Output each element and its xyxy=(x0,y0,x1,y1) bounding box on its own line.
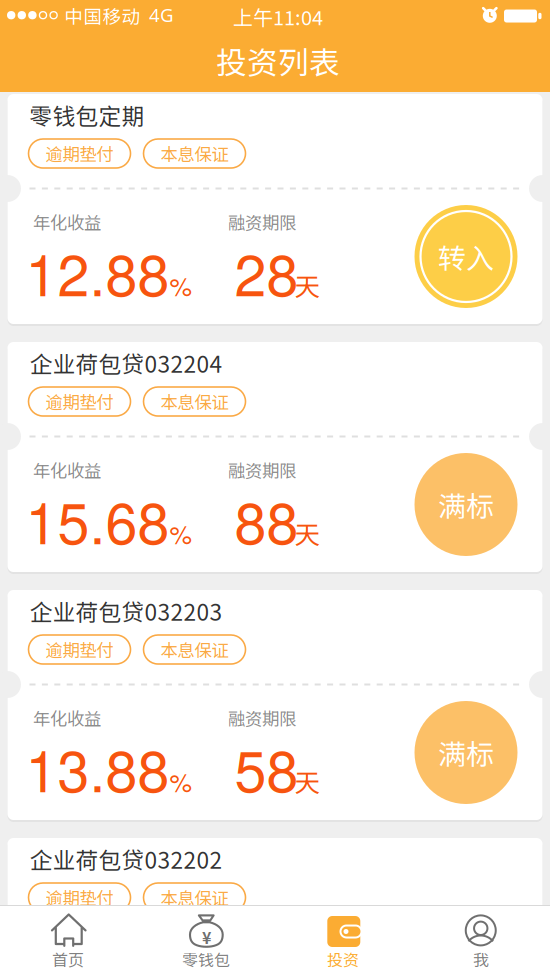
staticText: 融资期限 xyxy=(228,953,296,979)
staticText: 本息保证 xyxy=(160,389,228,414)
staticText: 逾期垫付 xyxy=(45,637,113,662)
staticText: 融资期限 xyxy=(228,457,296,483)
staticText: 满标 xyxy=(438,484,494,525)
button[interactable]: 投资 xyxy=(275,905,412,979)
staticText: 天 xyxy=(294,515,319,552)
staticText: % xyxy=(169,267,192,303)
button[interactable]: 我 xyxy=(412,905,550,979)
staticText: % xyxy=(169,515,192,551)
staticText: 58 xyxy=(234,726,298,809)
staticText: 12.88 xyxy=(25,230,169,313)
staticText: 15.68 xyxy=(25,478,169,561)
staticText: 融资期限 xyxy=(228,705,296,731)
staticText: 年化收益 xyxy=(33,705,101,731)
staticText: 逾期垫付 xyxy=(45,389,113,414)
staticText: 天 xyxy=(294,267,319,304)
staticText: 年化收益 xyxy=(33,209,101,235)
staticText: 本息保证 xyxy=(160,885,228,910)
staticText: 满标 xyxy=(438,732,494,773)
button[interactable]: 转入 xyxy=(414,205,517,308)
staticText: 企业荷包贷032202 xyxy=(29,842,222,875)
staticText: 年化收益 xyxy=(33,953,101,979)
button[interactable]: ¥ xyxy=(137,905,275,979)
staticText: ¥ xyxy=(202,925,211,949)
button[interactable]: 满标 xyxy=(414,949,517,979)
staticText: 上午11:04 xyxy=(233,2,323,31)
staticText: 4G xyxy=(149,2,174,27)
staticText: 融资期限 xyxy=(228,209,296,235)
button[interactable]: 满标 xyxy=(414,701,517,804)
staticText: 我 xyxy=(473,947,489,971)
staticText: 年化收益 xyxy=(33,457,101,483)
staticText: 投资列表 xyxy=(216,38,340,83)
button[interactable]: 企业荷包贷032204 xyxy=(7,342,542,572)
staticText: 企业荷包贷032203 xyxy=(29,594,222,627)
button[interactable]: 企业荷包贷032202 xyxy=(7,838,542,979)
staticText: 转入 xyxy=(438,236,494,277)
staticText: 本息保证 xyxy=(160,637,228,662)
button[interactable]: 零钱包定期 xyxy=(7,94,542,324)
staticText: 28 xyxy=(234,230,298,313)
staticText: 首页 xyxy=(52,947,84,971)
button[interactable]: 企业荷包贷032203 xyxy=(7,590,542,820)
staticText: 逾期垫付 xyxy=(45,141,113,166)
button[interactable]: 首页 xyxy=(0,905,137,979)
staticText: % xyxy=(169,763,192,799)
staticText: 中国移动 xyxy=(64,2,140,29)
staticText: 逾期垫付 xyxy=(45,885,113,910)
staticText: 本息保证 xyxy=(160,141,228,166)
staticText: 88 xyxy=(234,478,298,561)
staticText: 13.88 xyxy=(25,726,169,809)
staticText: 企业荷包贷032204 xyxy=(29,346,222,379)
staticText: 投资 xyxy=(327,947,359,971)
staticText: 天 xyxy=(294,763,319,800)
staticText: 零钱包 xyxy=(182,947,230,971)
button[interactable]: 满标 xyxy=(414,453,517,556)
staticText: 零钱包定期 xyxy=(29,98,144,131)
